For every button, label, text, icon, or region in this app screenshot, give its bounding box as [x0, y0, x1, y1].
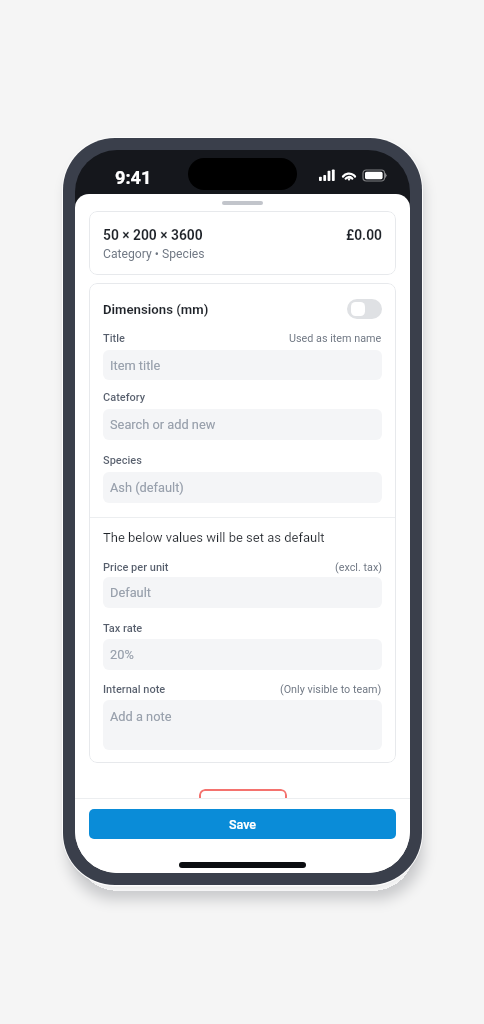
- button[interactable]: Ash (default): [103, 472, 382, 503]
- staticText: 9:41: [115, 167, 152, 188]
- staticText: Title: [103, 332, 125, 345]
- other: Battery: [363, 170, 387, 181]
- staticText: (Only visible to team): [280, 683, 382, 696]
- staticText: Ash (default): [110, 480, 184, 495]
- other: Wi-Fi: [341, 169, 357, 181]
- staticText: Delete: [225, 798, 261, 813]
- staticText: £0.00: [346, 227, 382, 243]
- staticText: Price per unit: [103, 561, 169, 574]
- staticText: Save: [229, 817, 257, 832]
- staticText: 20%: [110, 647, 134, 662]
- staticText: Item title: [110, 358, 161, 373]
- staticText: (excl. tax): [335, 561, 382, 574]
- staticText: Search or add new: [110, 417, 216, 432]
- staticText: Add a note: [110, 709, 172, 724]
- staticText: Used as item name: [289, 332, 382, 345]
- staticText: Tax rate: [103, 622, 143, 635]
- button[interactable]: Add a note: [103, 700, 382, 750]
- staticText: Internal note: [103, 683, 166, 696]
- button[interactable]: Save: [89, 809, 396, 839]
- staticText: Category • Species: [103, 247, 205, 261]
- staticText: The below values will be set as default: [103, 530, 325, 545]
- button[interactable]: Default: [103, 577, 382, 608]
- staticText: 50 × 200 × 3600: [103, 227, 203, 243]
- button[interactable]: 20%: [103, 639, 382, 670]
- staticText: Default: [110, 585, 151, 600]
- staticText: Catefory: [103, 391, 146, 404]
- staticText: Dimensions (mm): [103, 302, 209, 317]
- button[interactable]: Search or add new: [103, 409, 382, 440]
- button[interactable]: Toggle dimensions: [347, 299, 382, 319]
- button[interactable]: 50 × 200 × 3600: [89, 211, 396, 275]
- staticText: Species: [103, 454, 142, 467]
- button[interactable]: Item title: [103, 350, 382, 380]
- button[interactable]: Delete: [199, 789, 287, 821]
- other: Cellular signal: [319, 169, 335, 181]
